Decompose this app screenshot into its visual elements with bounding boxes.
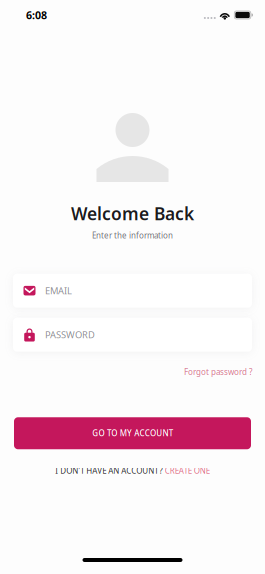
staticText: I DON'T HAVE AN ACCOUNT? (55, 465, 162, 476)
staticText: PASSWORD (45, 328, 95, 341)
button[interactable]: I DON'T HAVE AN ACCOUNT? (55, 461, 210, 480)
staticText: Enter the information (92, 230, 173, 241)
staticText: 6:08 (26, 8, 47, 22)
button[interactable]: Forgot password ? (176, 352, 252, 377)
staticText: CREATE ONE (165, 465, 210, 476)
staticText: EMAIL (45, 284, 72, 297)
button[interactable]: GO TO MY ACCOUNT (14, 417, 251, 449)
staticText: Welcome Back (71, 202, 194, 225)
staticText: GO TO MY ACCOUNT (92, 428, 173, 439)
button[interactable]: PASSWORD (13, 318, 252, 352)
staticText: Forgot password ? (184, 367, 252, 377)
button[interactable]: EMAIL (13, 274, 252, 308)
